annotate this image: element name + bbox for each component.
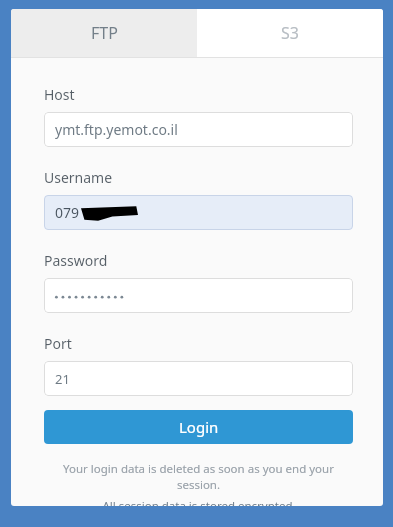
staticText: Your login data is deleted as soon as yo…	[44, 461, 353, 493]
button[interactable]: S3	[197, 9, 383, 57]
button[interactable]	[44, 278, 353, 313]
button[interactable]: Login	[44, 410, 353, 444]
button[interactable]: 079	[44, 195, 353, 230]
staticText: Username	[44, 168, 113, 187]
button[interactable]: ymt.ftp.yemot.co.il	[44, 112, 353, 147]
button[interactable]: All session data is stored encrypted.	[102, 498, 296, 506]
staticText: 21	[55, 370, 70, 388]
staticText: S3	[281, 22, 299, 44]
staticText: All session data is stored encrypted.	[102, 498, 296, 506]
button[interactable]: FTP	[11, 9, 197, 57]
button[interactable]: 21	[44, 361, 353, 396]
staticText: FTP	[91, 22, 118, 44]
staticText: 079	[55, 203, 80, 222]
staticText: Host	[44, 85, 75, 104]
staticText: Password	[44, 251, 108, 270]
staticText: Port	[44, 334, 72, 353]
staticText: ymt.ftp.yemot.co.il	[55, 120, 178, 139]
staticText: Login	[179, 417, 219, 437]
